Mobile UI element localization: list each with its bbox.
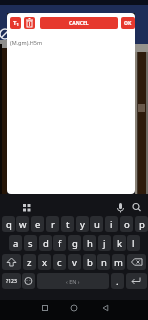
staticText: h: [87, 237, 93, 250]
staticText: i: [110, 218, 113, 231]
staticText: (M.gm).H5m: [10, 39, 43, 46]
button[interactable]: b: [83, 254, 96, 270]
button[interactable]: l: [127, 235, 140, 251]
button[interactable]: z: [23, 254, 36, 270]
staticText: c: [57, 256, 62, 269]
staticText: n: [101, 256, 107, 269]
staticText: z: [27, 256, 32, 269]
staticText: .: [116, 275, 119, 288]
button[interactable]: y: [76, 216, 89, 232]
staticText: k: [117, 237, 123, 250]
staticText: ‹ EN ›: [66, 278, 80, 285]
button[interactable]: q: [2, 216, 15, 232]
button[interactable]: n: [97, 254, 110, 270]
staticText: ?123: [6, 278, 17, 285]
button[interactable]: w: [16, 216, 29, 232]
staticText: w: [19, 218, 27, 231]
button[interactable]: [67, 301, 81, 315]
staticText: v: [72, 256, 77, 269]
staticText: a: [13, 237, 19, 250]
staticText: g: [72, 237, 78, 250]
staticText: b: [87, 256, 93, 269]
button[interactable]: [130, 201, 143, 214]
staticText: u: [94, 218, 100, 231]
staticText: o: [124, 218, 130, 231]
staticText: x: [42, 256, 48, 269]
button[interactable]: v: [68, 254, 81, 270]
button[interactable]: [2, 254, 21, 270]
staticText: d: [43, 237, 49, 250]
button[interactable]: ?123: [2, 273, 21, 289]
button[interactable]: t: [61, 216, 74, 232]
button[interactable]: [24, 17, 35, 29]
button[interactable]: r: [46, 216, 59, 232]
button[interactable]: [22, 273, 35, 289]
staticText: s: [28, 237, 33, 250]
staticText: CANCEL: [69, 20, 89, 27]
button[interactable]: s: [24, 235, 37, 251]
button[interactable]: u: [90, 216, 103, 232]
button[interactable]: T₁: [10, 17, 21, 29]
button[interactable]: o: [120, 216, 133, 232]
button[interactable]: [114, 201, 127, 214]
button[interactable]: OK: [121, 17, 135, 29]
button[interactable]: k: [113, 235, 126, 251]
staticText: f: [58, 237, 62, 250]
button[interactable]: CANCEL: [40, 17, 118, 29]
staticText: q: [6, 218, 12, 231]
button[interactable]: g: [68, 235, 81, 251]
button[interactable]: h: [83, 235, 96, 251]
staticText: j: [103, 237, 106, 250]
staticText: t: [66, 218, 70, 231]
staticText: e: [35, 218, 41, 231]
button[interactable]: a: [9, 235, 22, 251]
button[interactable]: c: [53, 254, 66, 270]
button[interactable]: i: [105, 216, 118, 232]
button[interactable]: [38, 301, 52, 315]
button[interactable]: x: [38, 254, 51, 270]
staticText: l: [132, 237, 135, 250]
staticText: m: [114, 256, 123, 269]
staticText: T₁: [13, 19, 19, 27]
button[interactable]: e: [31, 216, 44, 232]
button[interactable]: ‹ EN ›: [37, 273, 109, 289]
button[interactable]: [126, 273, 147, 289]
button[interactable]: j: [98, 235, 111, 251]
button[interactable]: p: [135, 216, 148, 232]
button[interactable]: .: [111, 273, 124, 289]
button[interactable]: [127, 254, 146, 270]
button[interactable]: [98, 301, 112, 315]
staticText: r: [51, 218, 55, 231]
staticText: p: [139, 218, 145, 231]
button[interactable]: d: [39, 235, 52, 251]
staticText: y: [80, 218, 85, 231]
button[interactable]: m: [112, 254, 125, 270]
button[interactable]: f: [53, 235, 66, 251]
staticText: OK: [124, 20, 132, 27]
button[interactable]: [20, 201, 33, 214]
